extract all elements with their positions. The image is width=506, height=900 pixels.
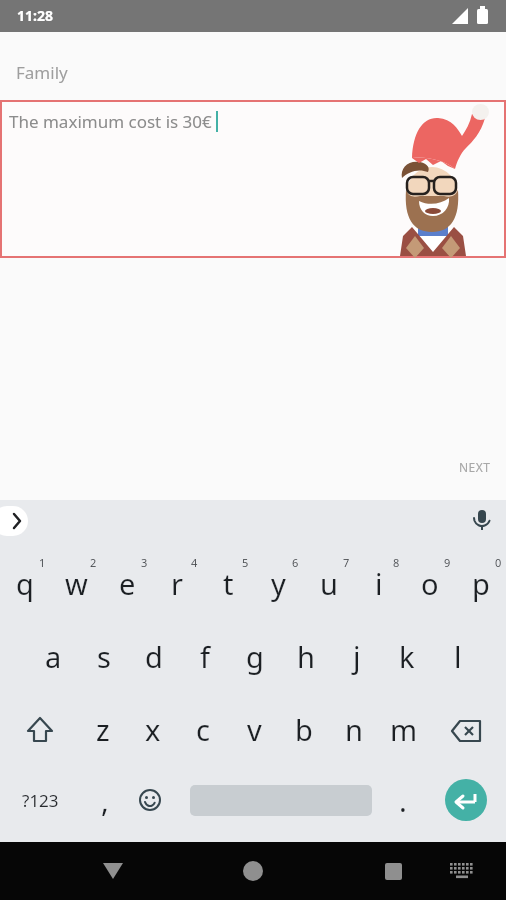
staticText: 1: [39, 555, 46, 570]
staticText: w: [65, 564, 88, 603]
button[interactable]: NEXT: [450, 453, 500, 481]
button[interactable]: j: [335, 626, 379, 686]
button[interactable]: [0, 506, 28, 536]
button[interactable]: [470, 508, 494, 534]
staticText: b: [295, 710, 313, 749]
button[interactable]: z: [81, 699, 125, 759]
button[interactable]: [92, 850, 134, 892]
staticText: f: [200, 637, 210, 676]
staticText: e: [119, 564, 136, 603]
staticText: g: [246, 637, 264, 676]
staticText: h: [297, 637, 315, 676]
button[interactable]: ,: [83, 770, 127, 830]
staticText: The maximum cost is 30€: [9, 110, 212, 133]
button[interactable]: e: [105, 553, 149, 613]
button[interactable]: k: [385, 626, 429, 686]
button[interactable]: p: [459, 553, 503, 613]
staticText: d: [145, 637, 163, 676]
staticText: r: [171, 564, 183, 603]
button[interactable]: [139, 789, 161, 811]
staticText: a: [45, 637, 62, 676]
staticText: 9: [444, 555, 451, 570]
staticText: ,: [101, 781, 109, 820]
staticText: 4: [191, 555, 198, 570]
staticText: Family: [16, 61, 68, 84]
staticText: .: [399, 781, 407, 820]
button[interactable]: n: [332, 699, 376, 759]
button[interactable]: [442, 854, 482, 888]
button[interactable]: [232, 850, 274, 892]
button[interactable]: c: [181, 699, 225, 759]
button[interactable]: o: [408, 553, 452, 613]
staticText: q: [16, 564, 34, 603]
button[interactable]: ?123: [12, 785, 68, 815]
staticText: z: [96, 710, 110, 749]
button[interactable]: q: [3, 553, 47, 613]
button[interactable]: x: [131, 699, 175, 759]
staticText: o: [421, 564, 439, 603]
button[interactable]: m: [382, 699, 426, 759]
button[interactable]: h: [284, 626, 328, 686]
button[interactable]: t: [206, 553, 250, 613]
staticText: 0: [495, 555, 502, 570]
staticText: t: [223, 564, 234, 603]
button[interactable]: b: [282, 699, 326, 759]
staticText: 2: [90, 555, 97, 570]
button[interactable]: [24, 716, 56, 744]
button[interactable]: y: [256, 553, 300, 613]
staticText: y: [271, 564, 286, 603]
staticText: x: [145, 710, 161, 749]
button[interactable]: [450, 719, 482, 743]
staticText: s: [97, 637, 111, 676]
button[interactable]: a: [31, 626, 75, 686]
button[interactable]: g: [233, 626, 277, 686]
staticText: n: [345, 710, 363, 749]
staticText: 8: [393, 555, 400, 570]
staticText: ?123: [22, 789, 59, 812]
staticText: k: [399, 637, 415, 676]
staticText: u: [320, 564, 338, 603]
staticText: NEXT: [459, 459, 491, 475]
staticText: 5: [242, 555, 249, 570]
staticText: l: [454, 637, 462, 676]
staticText: j: [353, 637, 361, 676]
staticText: c: [196, 710, 210, 749]
button[interactable]: f: [183, 626, 227, 686]
button[interactable]: u: [307, 553, 351, 613]
staticText: v: [247, 710, 262, 749]
button[interactable]: v: [232, 699, 276, 759]
staticText: 3: [141, 555, 148, 570]
staticText: i: [375, 564, 383, 603]
staticText: 11:28: [17, 6, 53, 25]
staticText: m: [390, 710, 418, 749]
button[interactable]: [372, 850, 414, 892]
button[interactable]: w: [54, 553, 98, 613]
staticText: 7: [343, 555, 350, 570]
staticText: 6: [292, 555, 299, 570]
button[interactable]: l: [436, 626, 480, 686]
button[interactable]: r: [155, 553, 199, 613]
button[interactable]: The maximum cost is 30€: [1, 101, 505, 257]
button[interactable]: [445, 779, 487, 821]
staticText: p: [472, 564, 490, 603]
button[interactable]: .: [381, 770, 425, 830]
button[interactable]: d: [132, 626, 176, 686]
button[interactable]: s: [82, 626, 126, 686]
button[interactable]: i: [357, 553, 401, 613]
